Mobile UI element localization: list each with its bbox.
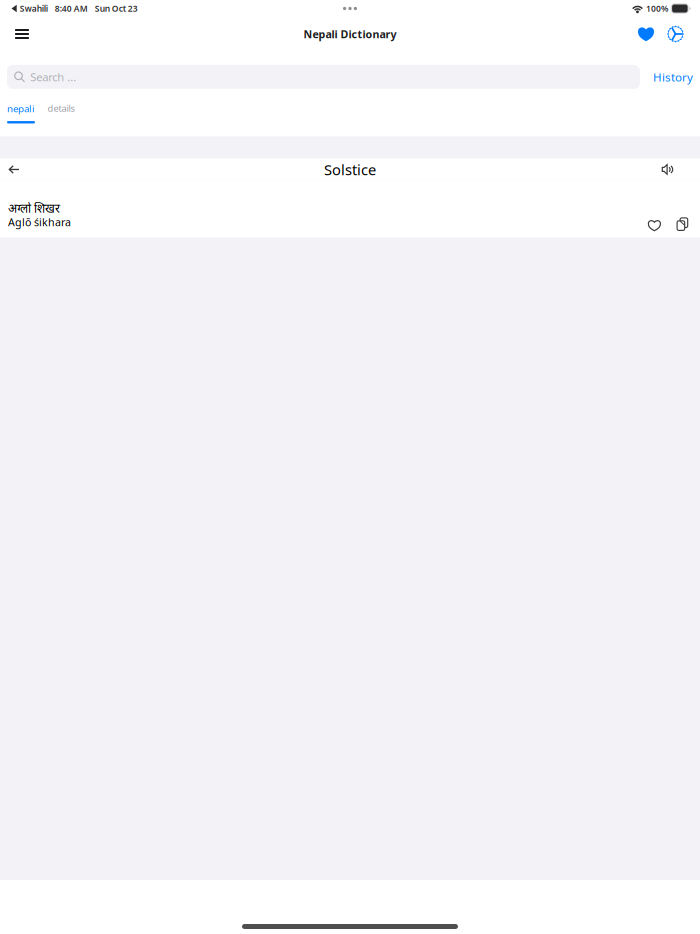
button[interactable]: Settings bbox=[661, 15, 700, 52]
staticText: 100% bbox=[646, 3, 668, 14]
button[interactable]: Menu bbox=[0, 19, 44, 49]
button[interactable]: Copy bbox=[668, 185, 700, 232]
staticText: Nepali Dictionary bbox=[303, 27, 396, 41]
button[interactable]: details bbox=[47, 102, 75, 123]
staticText: Search ... bbox=[30, 69, 76, 85]
button[interactable]: History bbox=[640, 64, 700, 90]
button[interactable]: Pronounce bbox=[651, 160, 700, 179]
staticText: History bbox=[653, 69, 693, 85]
staticText: Sun Oct 23 bbox=[95, 3, 138, 14]
staticText: 8:40 AM bbox=[55, 3, 88, 14]
staticText: Aglō śikhara bbox=[8, 215, 71, 229]
staticText: Swahili bbox=[20, 3, 48, 14]
button[interactable]: Favorites bbox=[631, 17, 661, 51]
button[interactable]: nepali bbox=[7, 102, 35, 123]
button[interactable]: Add to favorites bbox=[637, 185, 668, 233]
staticText: Solstice bbox=[324, 160, 376, 179]
staticText: अग्लो शिखर bbox=[8, 200, 60, 216]
staticText: nepali bbox=[7, 102, 35, 115]
button[interactable]: Back bbox=[0, 161, 29, 178]
staticText: details bbox=[47, 102, 74, 114]
